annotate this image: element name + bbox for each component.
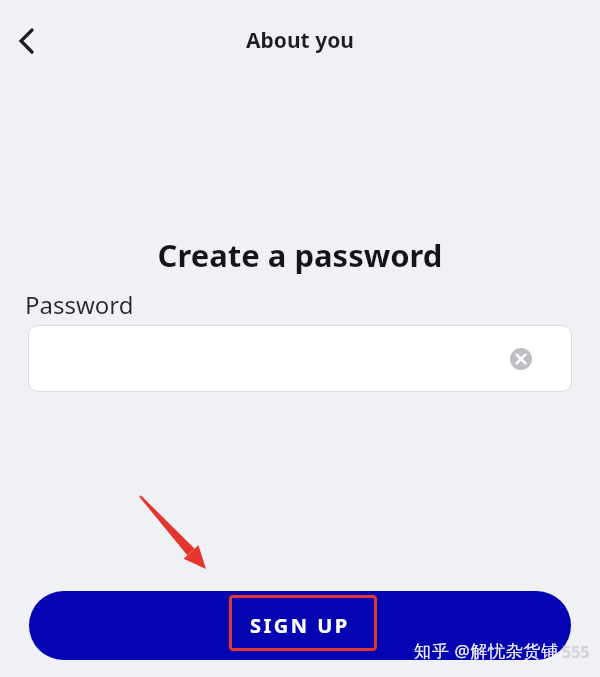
staticText: SIGN UP [250, 612, 350, 639]
button[interactable] [28, 325, 572, 392]
staticText: Password [25, 288, 134, 321]
staticText: 555 [562, 641, 590, 663]
button[interactable]: SIGN UP [29, 591, 571, 660]
staticText: 知乎 @解忧杂货铺 [414, 639, 560, 662]
button[interactable] [8, 22, 48, 62]
staticText: Create a password [0, 234, 600, 276]
staticText: About you [0, 26, 600, 55]
